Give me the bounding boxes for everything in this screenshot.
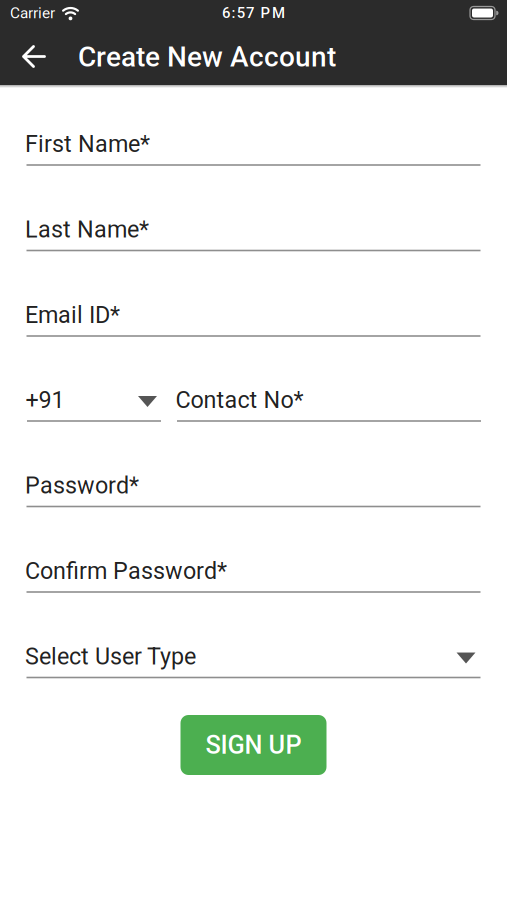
staticText: Password* xyxy=(25,472,139,499)
staticText: Carrier xyxy=(10,4,55,22)
staticText: Contact No* xyxy=(175,386,303,414)
staticText: Email ID* xyxy=(25,301,120,329)
button[interactable]: Confirm Password* xyxy=(26,543,480,597)
staticText: Confirm Password* xyxy=(25,557,227,585)
staticText: Select User Type xyxy=(25,643,196,670)
staticText: SIGN UP xyxy=(205,730,301,760)
staticText: First Name* xyxy=(25,130,150,158)
button[interactable]: First Name* xyxy=(26,116,480,170)
staticText: Last Name* xyxy=(25,216,149,243)
button[interactable]: Country code +91 xyxy=(27,372,161,426)
button[interactable]: Back xyxy=(12,34,56,78)
staticText: 6:57 PM xyxy=(222,4,285,22)
button[interactable]: Email ID* xyxy=(26,287,480,341)
button[interactable]: Password* xyxy=(26,457,480,511)
button[interactable]: SIGN UP xyxy=(180,715,326,775)
staticText: Create New Account xyxy=(78,41,336,73)
button[interactable]: Last Name* xyxy=(26,201,480,255)
button[interactable]: Contact No* xyxy=(177,372,481,426)
button[interactable]: Select User Type xyxy=(26,628,480,682)
staticText: +91 xyxy=(25,386,64,414)
